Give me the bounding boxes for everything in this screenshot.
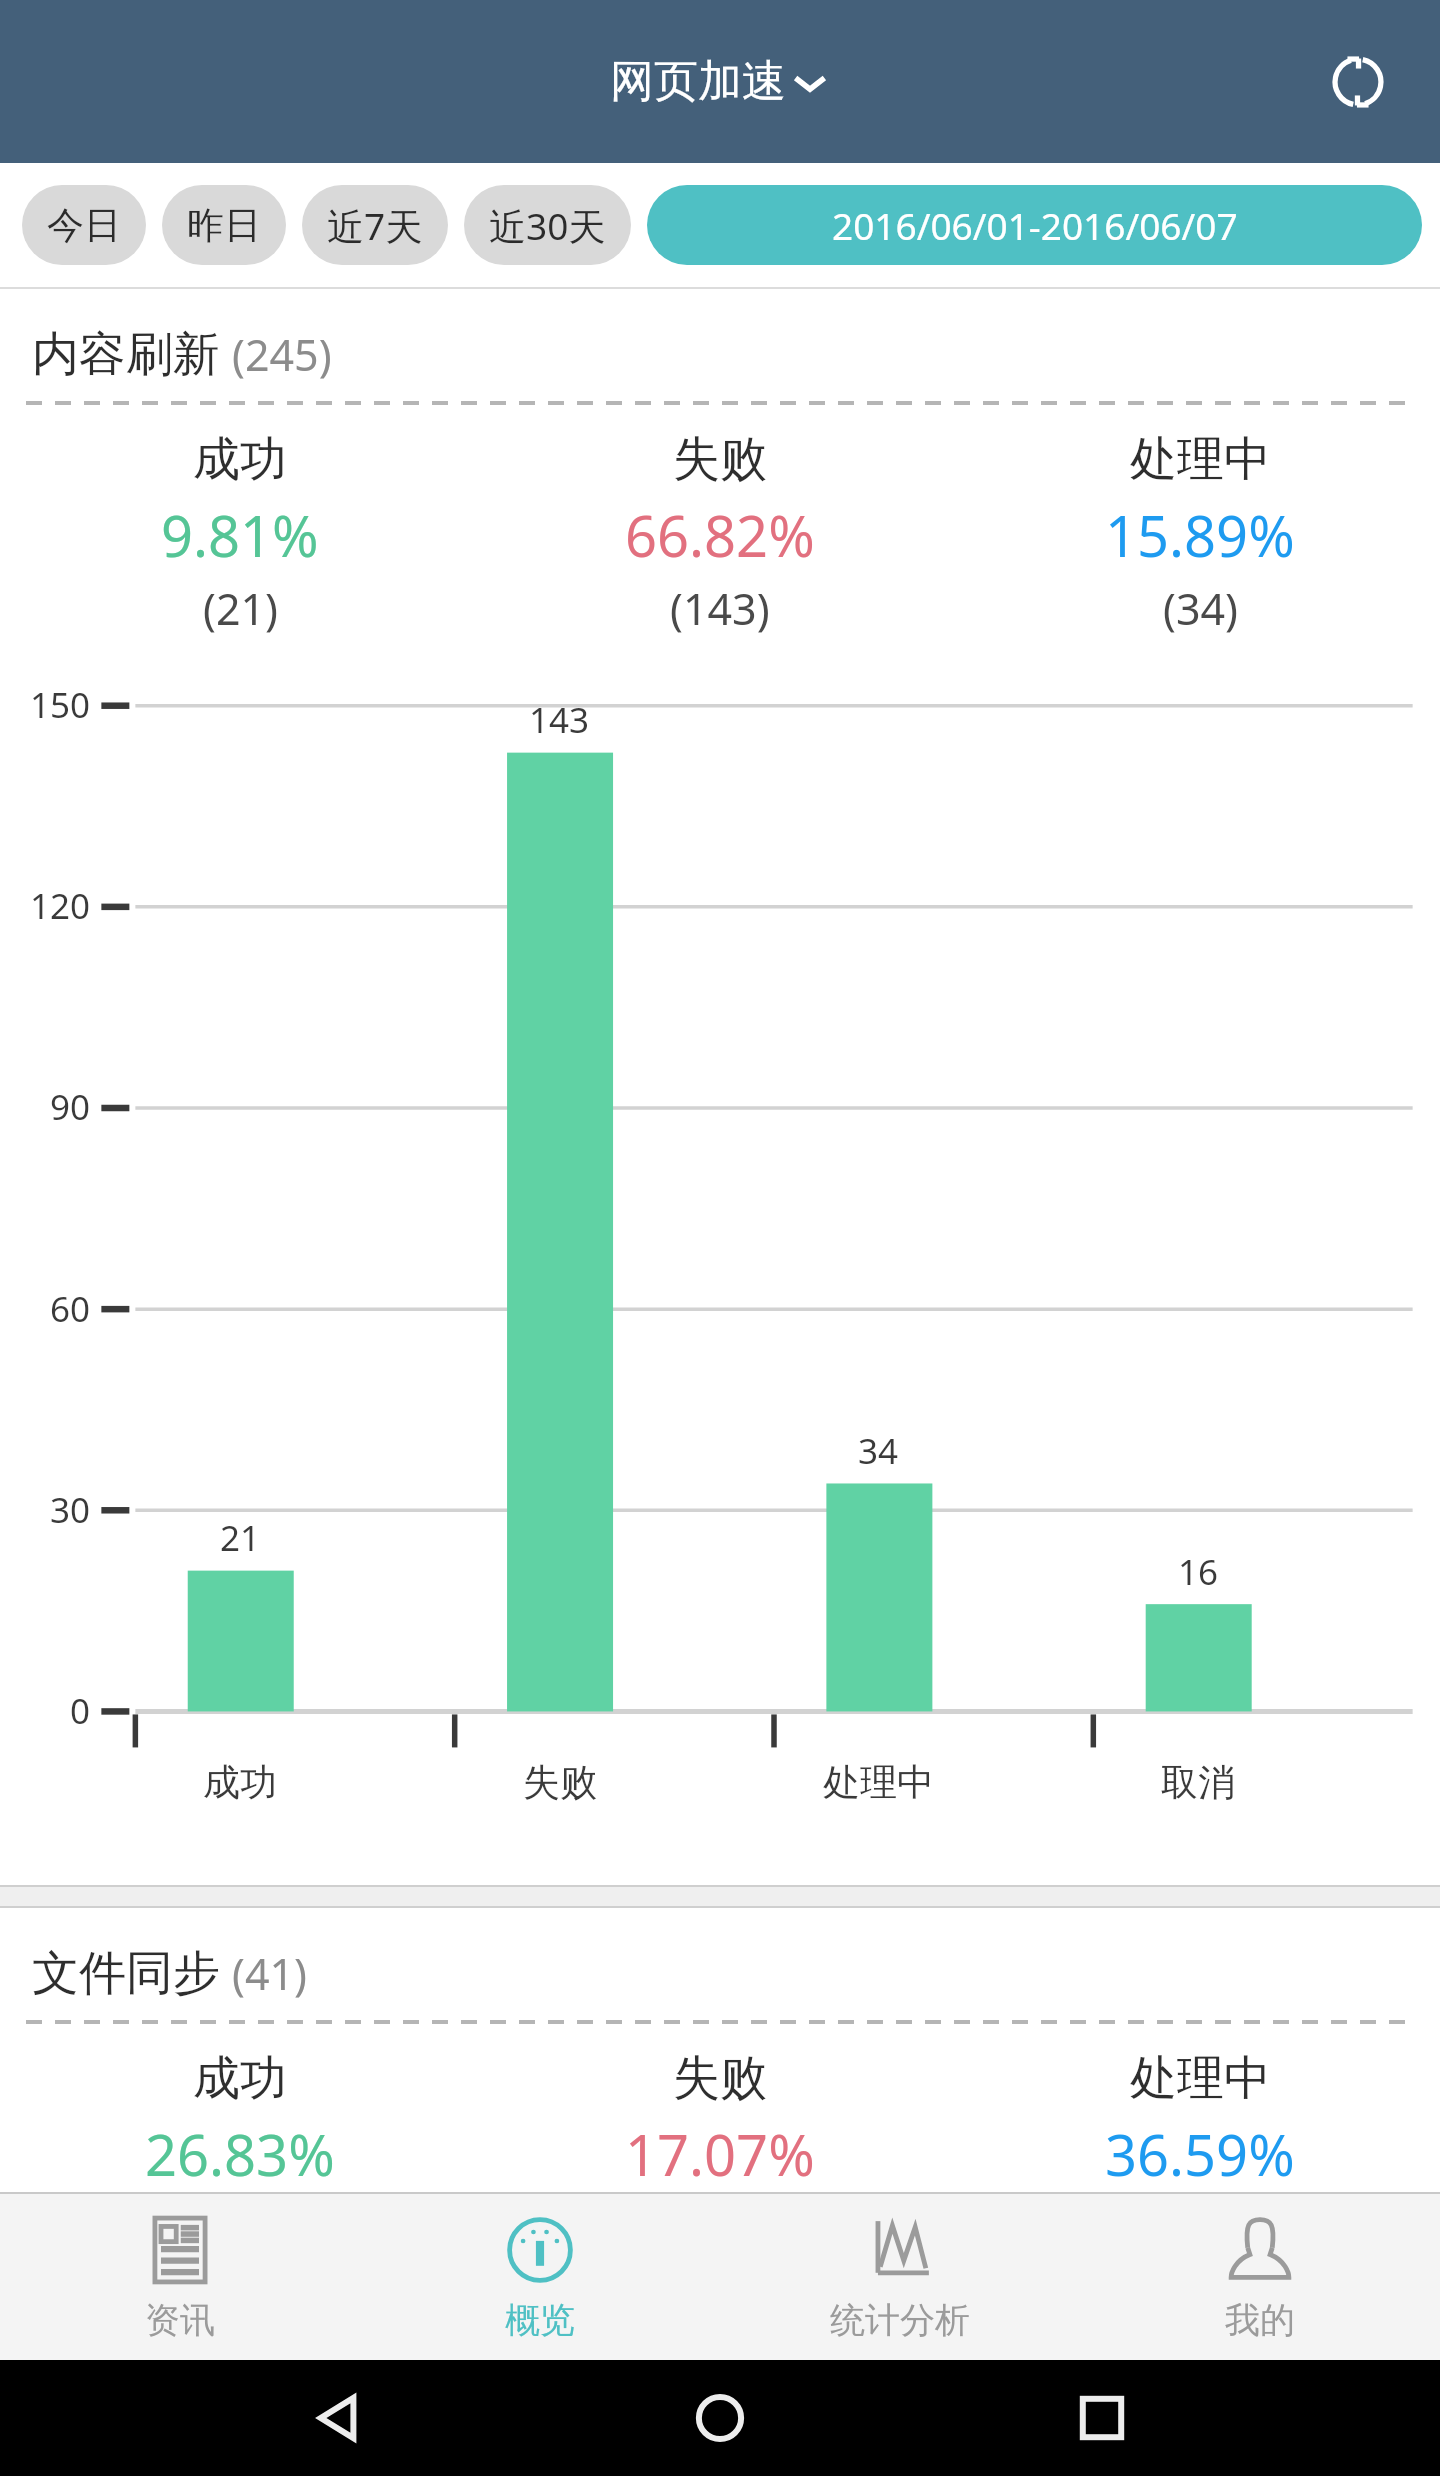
button[interactable]: 内容刷新 <box>0 289 1440 392</box>
staticText: 统计分析 <box>830 2298 970 2342</box>
staticText: 今日 <box>47 202 121 249</box>
button[interactable]: Back <box>296 2375 382 2461</box>
staticText: 我的 <box>1225 2298 1295 2342</box>
staticText: 处理中 <box>1130 2049 1271 2108</box>
staticText: 近30天 <box>489 200 606 251</box>
staticText: 30 <box>50 1486 91 1534</box>
staticText: 15.89% <box>1105 497 1295 573</box>
staticText: 失败 <box>673 430 767 489</box>
staticText: 处理中 <box>823 1759 934 1806</box>
staticText: (21) <box>203 579 278 638</box>
staticText: 150 <box>30 681 91 729</box>
button[interactable]: 文件同步 <box>0 1908 1440 2011</box>
button[interactable]: 成功 <box>0 430 480 638</box>
staticText: 90 <box>50 1083 91 1131</box>
staticText: 17.07% <box>625 2116 815 2192</box>
staticText: 近7天 <box>327 200 423 251</box>
button[interactable]: 2016/06/01-2016/06/07 <box>647 185 1422 265</box>
button[interactable]: 成功 <box>0 2049 480 2192</box>
button[interactable]: Recents <box>1059 2375 1145 2461</box>
staticText: 文件同步 <box>32 1944 220 2003</box>
button[interactable]: 昨日 <box>162 185 286 265</box>
button[interactable]: 近7天 <box>302 185 448 265</box>
staticText: 21 <box>220 1514 261 1562</box>
button[interactable]: 处理中 <box>960 430 1440 638</box>
staticText: 36.59% <box>1105 2116 1295 2192</box>
button[interactable]: 网页加速 <box>610 54 830 109</box>
staticText: 26.83% <box>145 2116 335 2192</box>
button[interactable]: 统计分析 <box>720 2194 1080 2360</box>
button[interactable]: 概览 <box>360 2194 720 2360</box>
staticText: 66.82% <box>625 497 815 573</box>
button[interactable]: 失败 <box>480 2049 960 2192</box>
staticText: 内容刷新 <box>32 325 220 384</box>
button[interactable]: 近30天 <box>464 185 631 265</box>
staticText: 0 <box>70 1687 91 1735</box>
staticText: 120 <box>30 882 91 930</box>
button[interactable]: 我的 <box>1080 2194 1440 2360</box>
staticText: 60 <box>50 1285 91 1333</box>
staticText: 失败 <box>523 1759 597 1806</box>
staticText: 取消 <box>1161 1759 1235 1806</box>
staticText: 34 <box>858 1427 899 1475</box>
staticText: 处理中 <box>1130 430 1271 489</box>
staticText: 资讯 <box>145 2298 215 2342</box>
staticText: 失败 <box>673 2049 767 2108</box>
button[interactable]: 今日 <box>22 185 146 265</box>
staticText: (41) <box>232 1944 307 2003</box>
staticText: 昨日 <box>187 202 261 249</box>
button[interactable]: 资讯 <box>0 2194 360 2360</box>
staticText: 网页加速 <box>610 54 786 109</box>
button[interactable]: Home <box>677 2375 763 2461</box>
staticText: 143 <box>529 696 590 744</box>
staticText: 成功 <box>193 430 287 489</box>
staticText: (143) <box>670 579 770 638</box>
button[interactable]: 处理中 <box>960 2049 1440 2192</box>
staticText: 成功 <box>193 2049 287 2108</box>
staticText: 2016/06/01-2016/06/07 <box>832 200 1238 250</box>
staticText: 概览 <box>505 2298 575 2342</box>
staticText: 成功 <box>203 1759 277 1806</box>
staticText: (34) <box>1163 579 1238 638</box>
staticText: 9.81% <box>161 497 319 573</box>
button[interactable]: 失败 <box>480 430 960 638</box>
staticText: (245) <box>232 325 332 384</box>
staticText: 16 <box>1178 1548 1219 1596</box>
button[interactable]: Refresh <box>1310 34 1406 130</box>
